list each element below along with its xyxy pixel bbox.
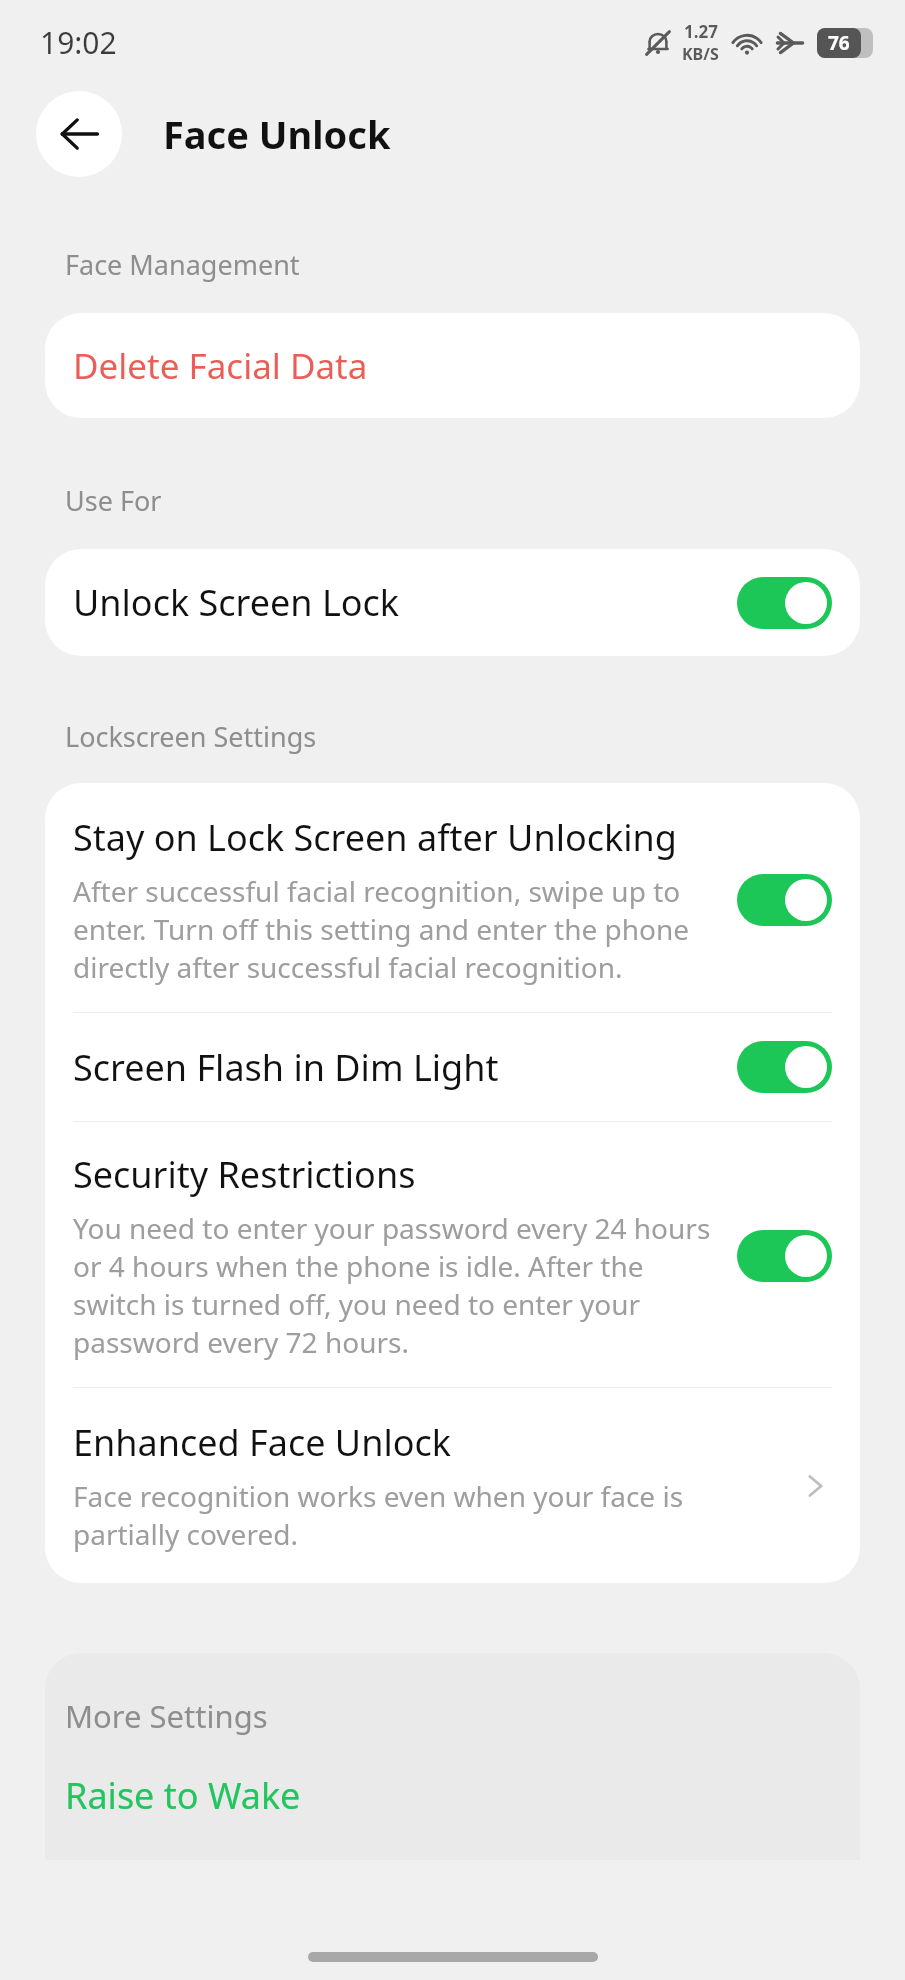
button[interactable]: Stay on Lock Screen after Unlocking [45, 783, 860, 1012]
staticText: You need to enter your password every 24… [73, 1209, 717, 1361]
button[interactable]: Toggle [737, 577, 832, 629]
staticText: Enhanced Face Unlock [73, 1418, 452, 1467]
button[interactable]: Enhanced Face Unlock [45, 1388, 860, 1583]
staticText: 1.27 [684, 20, 718, 43]
button[interactable]: Back [36, 91, 122, 177]
button[interactable]: Screen Flash in Dim Light [45, 1013, 860, 1121]
staticText: Lockscreen Settings [65, 718, 317, 755]
staticText: Stay on Lock Screen after Unlocking [73, 813, 677, 862]
button[interactable]: Toggle [737, 1230, 832, 1282]
staticText: After successful facial recognition, swi… [73, 872, 717, 986]
button[interactable]: Unlock Screen Lock [45, 549, 860, 656]
staticText: More Settings [65, 1695, 268, 1737]
button[interactable]: Toggle [737, 874, 832, 926]
staticText: Use For [65, 482, 162, 519]
staticText: 76 [828, 30, 850, 56]
staticText: KB/S [682, 43, 719, 65]
staticText: 19:02 [40, 22, 117, 63]
button[interactable]: Security Restrictions [45, 1122, 860, 1387]
staticText: Security Restrictions [73, 1150, 416, 1199]
staticText: Face recognition works even when your fa… [73, 1477, 778, 1553]
button[interactable]: Delete Facial Data [45, 313, 860, 418]
staticText: Unlock Screen Lock [73, 578, 737, 627]
staticText: Screen Flash in Dim Light [73, 1043, 737, 1092]
staticText: Raise to Wake [65, 1771, 301, 1820]
button[interactable]: Toggle [737, 1041, 832, 1093]
staticText: Face Management [65, 246, 300, 283]
staticText: Face Unlock [163, 108, 391, 160]
staticText: Delete Facial Data [73, 342, 368, 390]
